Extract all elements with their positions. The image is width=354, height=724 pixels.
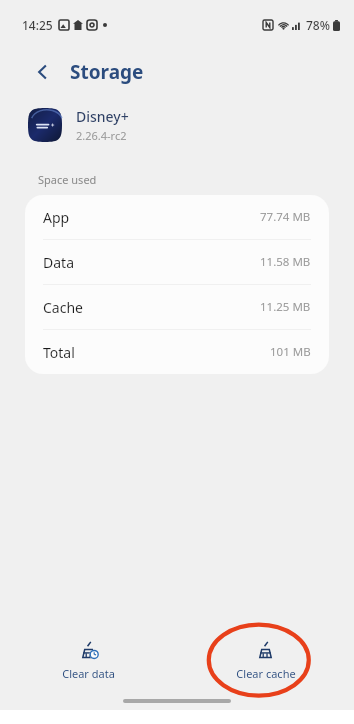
button[interactable]: App (25, 195, 329, 240)
button[interactable]: Clear cache (177, 634, 354, 687)
staticText: Clear cache (236, 666, 296, 681)
button[interactable]: Data (25, 240, 329, 285)
staticText: App (43, 208, 70, 227)
button[interactable]: Back (28, 57, 58, 87)
staticText: Total (43, 343, 75, 362)
staticText: 77.74 MB (260, 209, 311, 225)
staticText: Cache (43, 298, 83, 317)
staticText: 14:25 (22, 17, 53, 33)
button[interactable]: Total (25, 330, 329, 374)
staticText: Data (43, 253, 74, 272)
staticText: Storage (70, 59, 144, 85)
button[interactable]: Clear data (0, 634, 177, 687)
button[interactable]: Cache (25, 285, 329, 330)
staticText: Disney+ (76, 107, 129, 126)
staticText: Clear data (62, 666, 115, 681)
staticText: 78% (306, 17, 330, 33)
staticText: 11.58 MB (260, 254, 311, 270)
staticText: 2.26.4-rc2 (76, 128, 127, 143)
staticText: 101 MB (270, 344, 311, 360)
staticText: Space used (38, 172, 97, 187)
staticText: 11.25 MB (260, 299, 311, 315)
